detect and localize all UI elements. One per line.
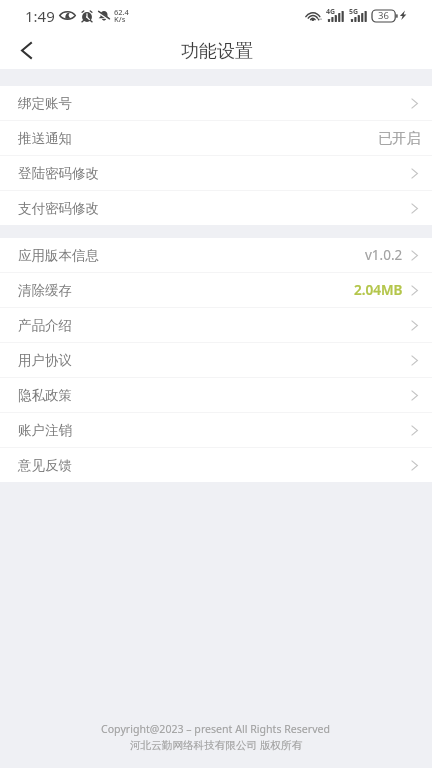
staticText: 62.4 [114,7,129,17]
staticText: Copyright@2023 – present All Rights Rese… [101,722,331,736]
staticText: 用户协议 [18,352,72,369]
button[interactable]: 产品介绍 [0,308,432,342]
button[interactable]: Back [6,29,46,69]
button[interactable]: 账户注销 [0,413,432,447]
staticText: 隐私政策 [18,387,72,404]
staticText: 账户注销 [18,422,72,439]
button[interactable]: 绑定账号 [0,86,432,120]
staticText: 登陆密码修改 [18,165,99,182]
button[interactable]: 应用版本信息 [0,238,432,272]
staticText: 36 [378,9,389,22]
staticText: 5G [349,7,359,17]
staticText: 1:49 [25,6,55,26]
staticText: K/s [114,14,126,24]
button[interactable]: 推送通知 [0,121,432,155]
staticText: 4G [326,7,336,17]
button[interactable]: 登陆密码修改 [0,156,432,190]
staticText: 应用版本信息 [18,247,99,264]
staticText: 支付密码修改 [18,200,99,217]
staticText: 意见反馈 [18,457,72,474]
staticText: 河北云勤网络科技有限公司 版权所有 [130,738,303,752]
button[interactable]: 意见反馈 [0,448,432,482]
staticText: 已开启 [378,129,421,147]
staticText: 功能设置 [181,40,253,63]
button[interactable]: 支付密码修改 [0,191,432,225]
button[interactable]: 清除缓存 [0,273,432,307]
staticText: 清除缓存 [18,282,72,299]
staticText: 推送通知 [18,130,72,147]
button[interactable]: 隐私政策 [0,378,432,412]
button[interactable]: 用户协议 [0,343,432,377]
staticText: 2.04MB [354,281,403,299]
staticText: 绑定账号 [18,95,72,112]
staticText: v1.0.2 [365,246,403,264]
staticText: 产品介绍 [18,317,72,334]
